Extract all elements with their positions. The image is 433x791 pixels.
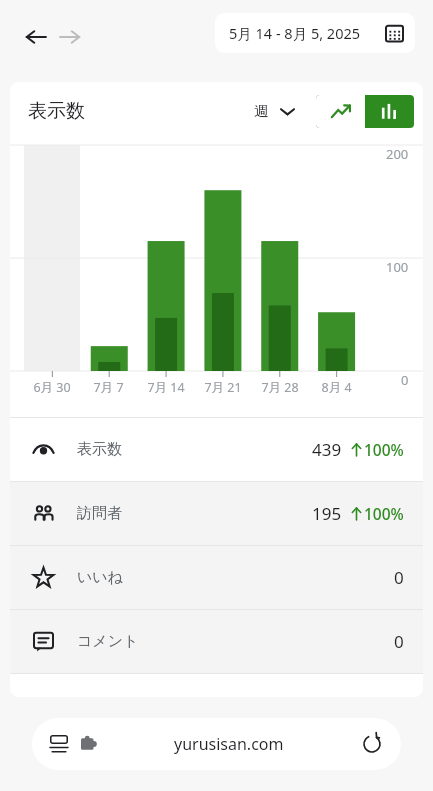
staticText: 100% xyxy=(364,503,404,524)
staticText: 7月 28 xyxy=(261,379,299,396)
button[interactable]: 5月 14 - 8月 5, 2025 xyxy=(215,13,415,53)
staticText: コメント xyxy=(77,632,139,651)
staticText: 439 xyxy=(312,438,342,461)
button[interactable]: Line chart xyxy=(316,95,365,128)
staticText: 195 xyxy=(312,502,342,525)
button[interactable]: Bar chart xyxy=(365,95,414,128)
staticText: 7月 7 xyxy=(93,379,124,396)
staticText: 100% xyxy=(364,439,404,460)
staticText: 訪問者 xyxy=(77,504,122,523)
button[interactable]: 表示数 xyxy=(10,418,423,481)
button[interactable]: Back xyxy=(16,17,56,57)
button[interactable]: Forward xyxy=(50,17,90,57)
staticText: 表示数 xyxy=(28,99,85,123)
staticText: いいね xyxy=(77,568,124,587)
staticText: 7月 21 xyxy=(204,379,242,396)
button[interactable]: Reload xyxy=(357,729,387,759)
button[interactable]: Reader mode xyxy=(32,718,401,770)
staticText: 表示数 xyxy=(77,440,122,459)
staticText: 100 xyxy=(386,258,409,276)
staticText: 0 xyxy=(394,566,404,589)
staticText: 6月 30 xyxy=(33,379,71,396)
button[interactable]: 週 xyxy=(248,93,300,129)
button[interactable]: Reader mode xyxy=(46,731,72,757)
button[interactable]: コメント xyxy=(10,610,423,673)
button[interactable]: Extensions xyxy=(76,731,102,757)
staticText: yurusisan.com xyxy=(174,733,284,755)
button[interactable]: いいね xyxy=(10,546,423,609)
staticText: 200 xyxy=(386,145,409,163)
staticText: 0 xyxy=(394,630,404,653)
staticText: 8月 4 xyxy=(321,379,352,396)
staticText: 7月 14 xyxy=(147,379,185,396)
staticText: 5月 14 - 8月 5, 2025 xyxy=(229,23,361,43)
button[interactable]: 訪問者 xyxy=(10,482,423,545)
staticText: 0 xyxy=(401,371,409,389)
staticText: 週 xyxy=(254,102,269,120)
